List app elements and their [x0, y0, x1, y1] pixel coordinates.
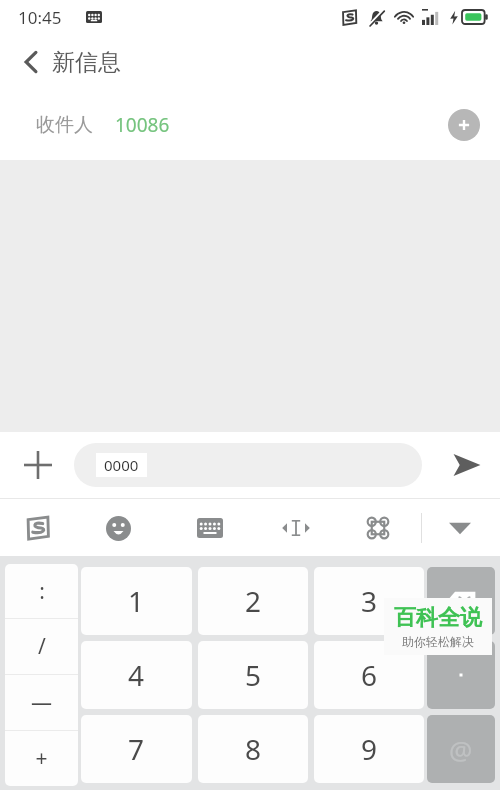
button[interactable]: Backspace: [427, 567, 495, 635]
button[interactable]: 3: [314, 567, 424, 635]
button[interactable]: +: [5, 731, 78, 786]
staticText: 收件人: [36, 113, 93, 137]
staticText: 10086: [115, 112, 170, 138]
staticText: —: [31, 688, 52, 717]
button[interactable]: Send: [444, 442, 490, 488]
button[interactable]: Add recipient: [448, 109, 480, 141]
button[interactable]: 7: [81, 715, 192, 783]
staticText: 10:45: [18, 6, 62, 29]
button[interactable]: 6: [314, 641, 424, 709]
button[interactable]: 4: [81, 641, 192, 709]
staticText: 6: [361, 656, 378, 694]
button[interactable]: 2: [198, 567, 308, 635]
button[interactable]: Hide keyboard: [438, 506, 482, 550]
staticText: :: [39, 577, 45, 606]
staticText: /: [38, 632, 46, 661]
button[interactable]: Move cursor: [274, 506, 318, 550]
staticText: 百科全说: [394, 604, 482, 632]
button[interactable]: Input method: [16, 506, 60, 550]
button[interactable]: /: [5, 619, 78, 674]
button[interactable]: 1: [81, 567, 192, 635]
staticText: 新信息: [52, 48, 121, 77]
button[interactable]: [427, 641, 495, 709]
button[interactable]: 收件人: [0, 90, 500, 160]
staticText: 1: [128, 582, 145, 620]
staticText: 2: [245, 582, 262, 620]
staticText: 助你轻松解决: [402, 634, 474, 649]
staticText: 5: [245, 656, 262, 694]
button[interactable]: Emoji: [96, 506, 140, 550]
button[interactable]: 5: [198, 641, 308, 709]
button[interactable]: Back: [0, 34, 500, 90]
other: Back: [24, 50, 38, 74]
button[interactable]: :: [5, 564, 78, 618]
staticText: @: [449, 732, 473, 767]
button[interactable]: —: [5, 675, 78, 730]
staticText: 0000: [104, 455, 139, 475]
button[interactable]: 8: [198, 715, 308, 783]
button[interactable]: Add attachment: [14, 441, 62, 489]
staticText: 4: [128, 656, 145, 694]
staticText: 7: [128, 730, 145, 768]
button[interactable]: Keyboard layout: [188, 506, 232, 550]
button[interactable]: Shortcuts: [356, 506, 400, 550]
staticText: +: [35, 744, 48, 773]
staticText: 9: [361, 730, 378, 768]
button[interactable]: 9: [314, 715, 424, 783]
staticText: 3: [361, 582, 378, 620]
staticText: 8: [245, 730, 262, 768]
button[interactable]: At sign: [427, 715, 495, 783]
button[interactable]: 0000: [74, 443, 422, 487]
